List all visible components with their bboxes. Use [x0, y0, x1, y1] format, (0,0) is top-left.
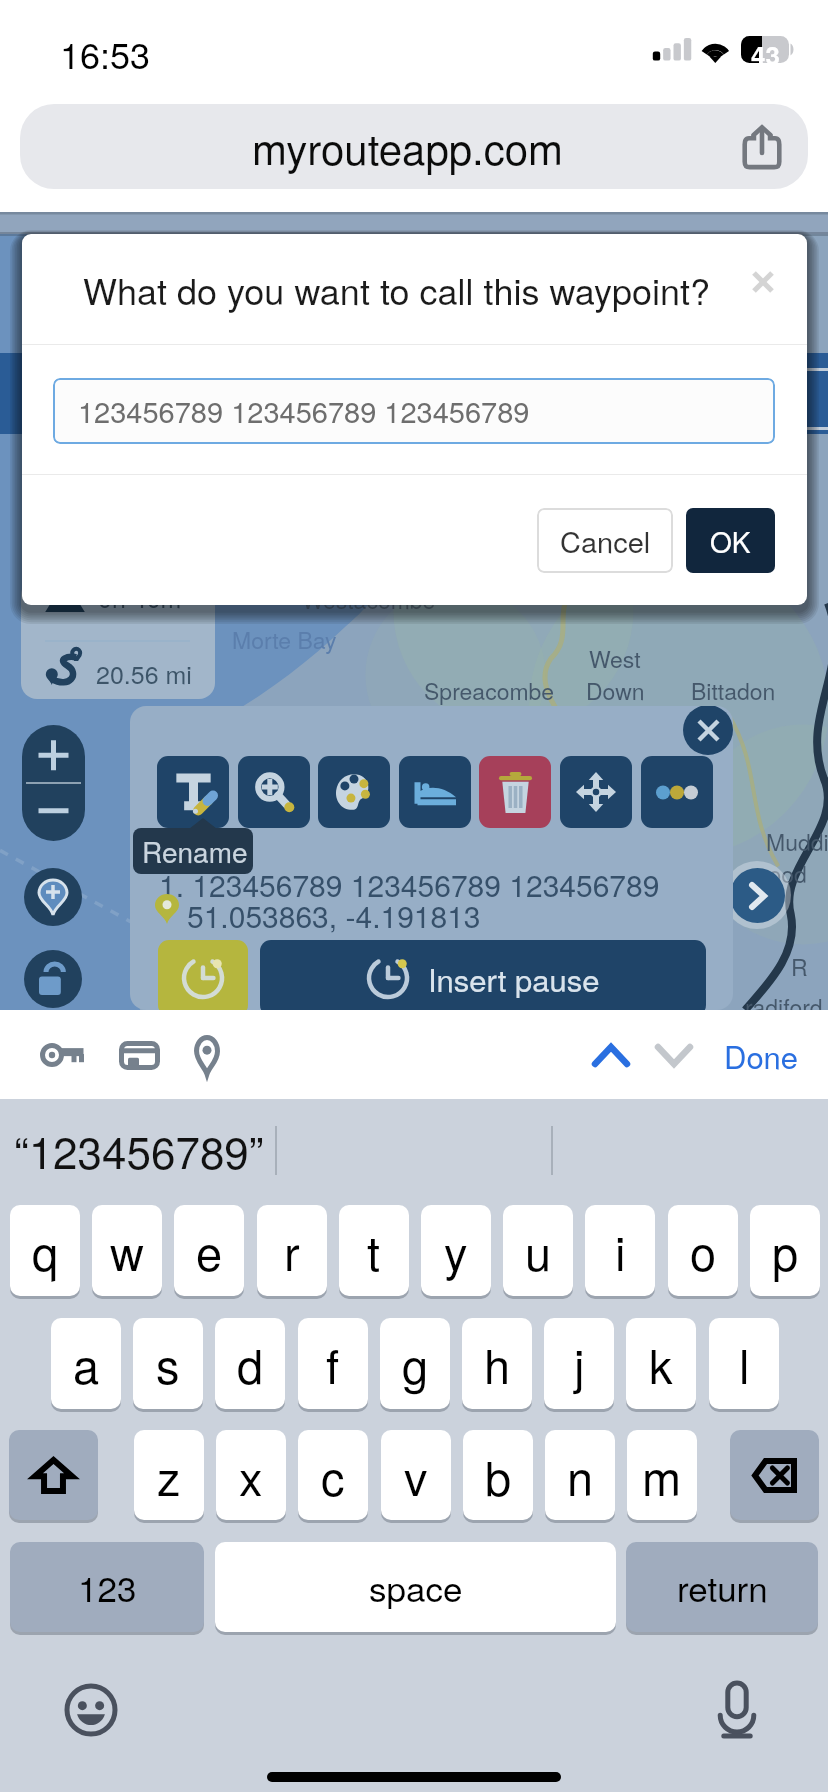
- button[interactable]: a: [51, 1318, 121, 1409]
- button[interactable]: Tool 5: [479, 756, 551, 828]
- staticText: Spreacombe: [424, 674, 555, 707]
- staticText: Rename: [142, 831, 248, 871]
- button[interactable]: Shift: [9, 1430, 98, 1520]
- button[interactable]: Previous field: [580, 1030, 642, 1080]
- button[interactable]: r: [257, 1205, 327, 1296]
- staticText: d: [237, 1330, 264, 1397]
- button[interactable]: Tool 6: [560, 756, 632, 828]
- button[interactable]: v: [381, 1430, 451, 1520]
- staticText: b: [485, 1442, 512, 1509]
- staticText: x: [239, 1442, 263, 1509]
- staticText: f: [326, 1330, 340, 1397]
- staticText: s: [156, 1330, 180, 1397]
- button[interactable]: Done: [712, 1030, 810, 1080]
- staticText: z: [157, 1442, 181, 1509]
- button[interactable]: e: [174, 1205, 244, 1296]
- button[interactable]: x: [216, 1430, 286, 1520]
- button[interactable]: z: [134, 1430, 204, 1520]
- button[interactable]: i: [585, 1205, 655, 1296]
- button[interactable]: Lock: [24, 950, 82, 1008]
- button[interactable]: Cancel: [537, 508, 673, 573]
- staticText: p: [772, 1217, 799, 1284]
- staticText: OK: [710, 521, 751, 561]
- staticText: k: [649, 1330, 673, 1397]
- button[interactable]: q: [10, 1205, 80, 1296]
- staticText: radiford: [745, 990, 823, 1023]
- staticText: Morte Bay: [232, 623, 337, 656]
- button[interactable]: Contact info: [177, 1023, 236, 1087]
- button[interactable]: myrouteapp.com: [20, 104, 808, 189]
- button[interactable]: c: [298, 1430, 368, 1520]
- staticText: 20.56 mi: [96, 655, 192, 691]
- staticText: t: [367, 1217, 381, 1284]
- button[interactable]: s: [133, 1318, 203, 1409]
- button[interactable]: 123: [10, 1542, 204, 1632]
- button[interactable]: 123456789 123456789 123456789: [53, 378, 775, 444]
- button[interactable]: o: [668, 1205, 738, 1296]
- staticText: 123456789 123456789 123456789: [78, 390, 530, 432]
- staticText: j: [574, 1330, 585, 1397]
- button[interactable]: return: [626, 1542, 818, 1632]
- staticText: Westacombe: [302, 583, 436, 616]
- button[interactable]: p: [750, 1205, 820, 1296]
- button[interactable]: Pause: [158, 940, 248, 1010]
- button[interactable]: m: [627, 1430, 697, 1520]
- staticText: space: [369, 1562, 463, 1612]
- button[interactable]: Next field: [643, 1030, 705, 1080]
- button[interactable]: f: [298, 1318, 368, 1409]
- staticText: 51.053863, -4.191813: [187, 894, 481, 937]
- button[interactable]: Next: [730, 868, 785, 923]
- button[interactable]: Credit card: [104, 1026, 175, 1084]
- button[interactable]: Tool 2: [238, 756, 310, 828]
- staticText: m: [642, 1442, 682, 1509]
- staticText: r: [284, 1217, 300, 1284]
- staticText: l: [739, 1330, 750, 1397]
- staticText: q: [32, 1217, 59, 1284]
- button[interactable]: u: [503, 1205, 573, 1296]
- staticText: Muddi: [766, 825, 828, 858]
- button[interactable]: Emoji: [60, 1679, 122, 1741]
- button[interactable]: Tool 7: [641, 756, 713, 828]
- staticText: o: [690, 1217, 717, 1284]
- staticText: wood: [752, 857, 807, 890]
- button[interactable]: Tool 1: [157, 756, 229, 828]
- staticText: h: [484, 1330, 511, 1397]
- staticText: 0h 40m: [98, 579, 182, 615]
- staticText: n: [567, 1442, 594, 1509]
- button[interactable]: h: [462, 1318, 532, 1409]
- button[interactable]: n: [545, 1430, 615, 1520]
- button[interactable]: w: [92, 1205, 162, 1296]
- button[interactable]: OK: [686, 508, 775, 573]
- staticText: R: [791, 950, 808, 983]
- staticText: y: [444, 1217, 468, 1284]
- button[interactable]: Passwords: [25, 1026, 100, 1084]
- button[interactable]: Zoom: [22, 725, 85, 841]
- staticText: Bittadon: [691, 674, 776, 707]
- staticText: 43: [751, 36, 780, 64]
- button[interactable]: t: [339, 1205, 409, 1296]
- button[interactable]: space: [215, 1542, 616, 1632]
- button[interactable]: Close: [739, 258, 787, 306]
- button[interactable]: b: [463, 1430, 533, 1520]
- button[interactable]: l: [709, 1318, 779, 1409]
- button[interactable]: y: [421, 1205, 491, 1296]
- button[interactable]: My location: [24, 868, 82, 926]
- button[interactable]: j: [544, 1318, 614, 1409]
- button[interactable]: Tool 3: [318, 756, 390, 828]
- button[interactable]: Dictation: [706, 1679, 768, 1741]
- button[interactable]: d: [215, 1318, 285, 1409]
- button[interactable]: Share: [734, 119, 790, 175]
- button[interactable]: Close panel: [683, 706, 733, 755]
- staticText: myrouteapp.com: [252, 117, 564, 177]
- button[interactable]: “123456789”: [0, 1099, 275, 1200]
- button[interactable]: Tool 4: [399, 756, 471, 828]
- button[interactable]: Insert pause: [260, 940, 706, 1010]
- button[interactable]: k: [626, 1318, 696, 1409]
- staticText: 1. 123456789 123456789 123456789: [159, 863, 660, 906]
- staticText: u: [525, 1217, 552, 1284]
- button[interactable]: g: [380, 1318, 450, 1409]
- staticText: What do you want to call this waypoint?: [83, 264, 711, 316]
- button[interactable]: Backspace: [730, 1430, 819, 1520]
- staticText: Down: [586, 674, 645, 707]
- staticText: 16:53: [60, 28, 151, 80]
